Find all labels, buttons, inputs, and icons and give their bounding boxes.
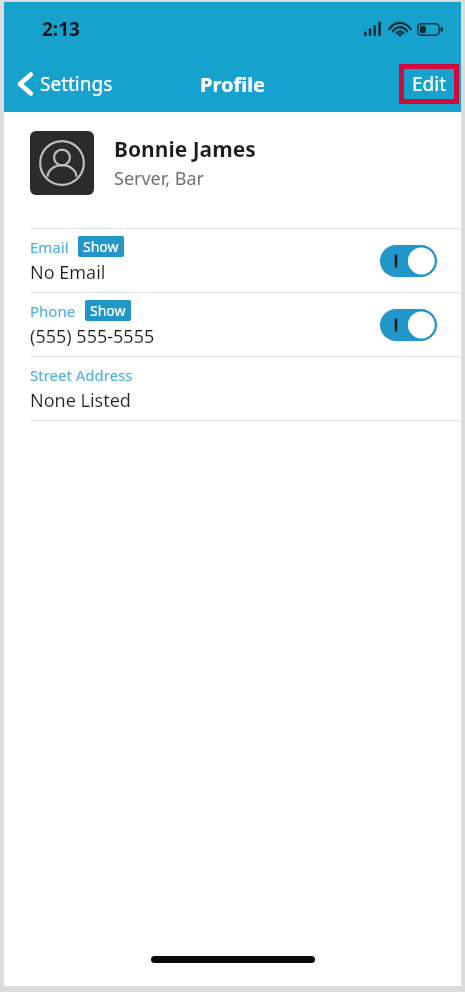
staticText: (555) 555-5555 <box>30 324 155 349</box>
staticText: Settings <box>40 71 113 97</box>
staticText: Show <box>90 301 126 320</box>
button[interactable]: Settings <box>12 65 119 103</box>
staticText: Show <box>83 237 119 256</box>
button[interactable]: Toggle visibility <box>380 245 437 277</box>
button[interactable]: Toggle visibility <box>380 309 437 341</box>
staticText: None Listed <box>30 388 131 413</box>
staticText: Edit <box>412 71 447 97</box>
staticText: 2:13 <box>42 16 80 42</box>
button[interactable]: Phone <box>4 293 461 356</box>
staticText: No Email <box>30 260 106 285</box>
button[interactable]: Street Address <box>4 357 461 420</box>
button[interactable]: Bonnie James <box>4 131 461 195</box>
button[interactable]: Edit <box>404 69 454 99</box>
staticText: Email <box>30 237 69 257</box>
staticText: Street Address <box>30 365 133 385</box>
button[interactable]: Show <box>85 300 131 321</box>
staticText: Phone <box>30 301 76 321</box>
button[interactable]: Show <box>78 236 124 257</box>
staticText: Profile <box>200 71 266 98</box>
button[interactable]: Email <box>4 229 461 292</box>
staticText: Bonnie James <box>114 135 256 164</box>
staticText: Server, Bar <box>114 166 205 191</box>
